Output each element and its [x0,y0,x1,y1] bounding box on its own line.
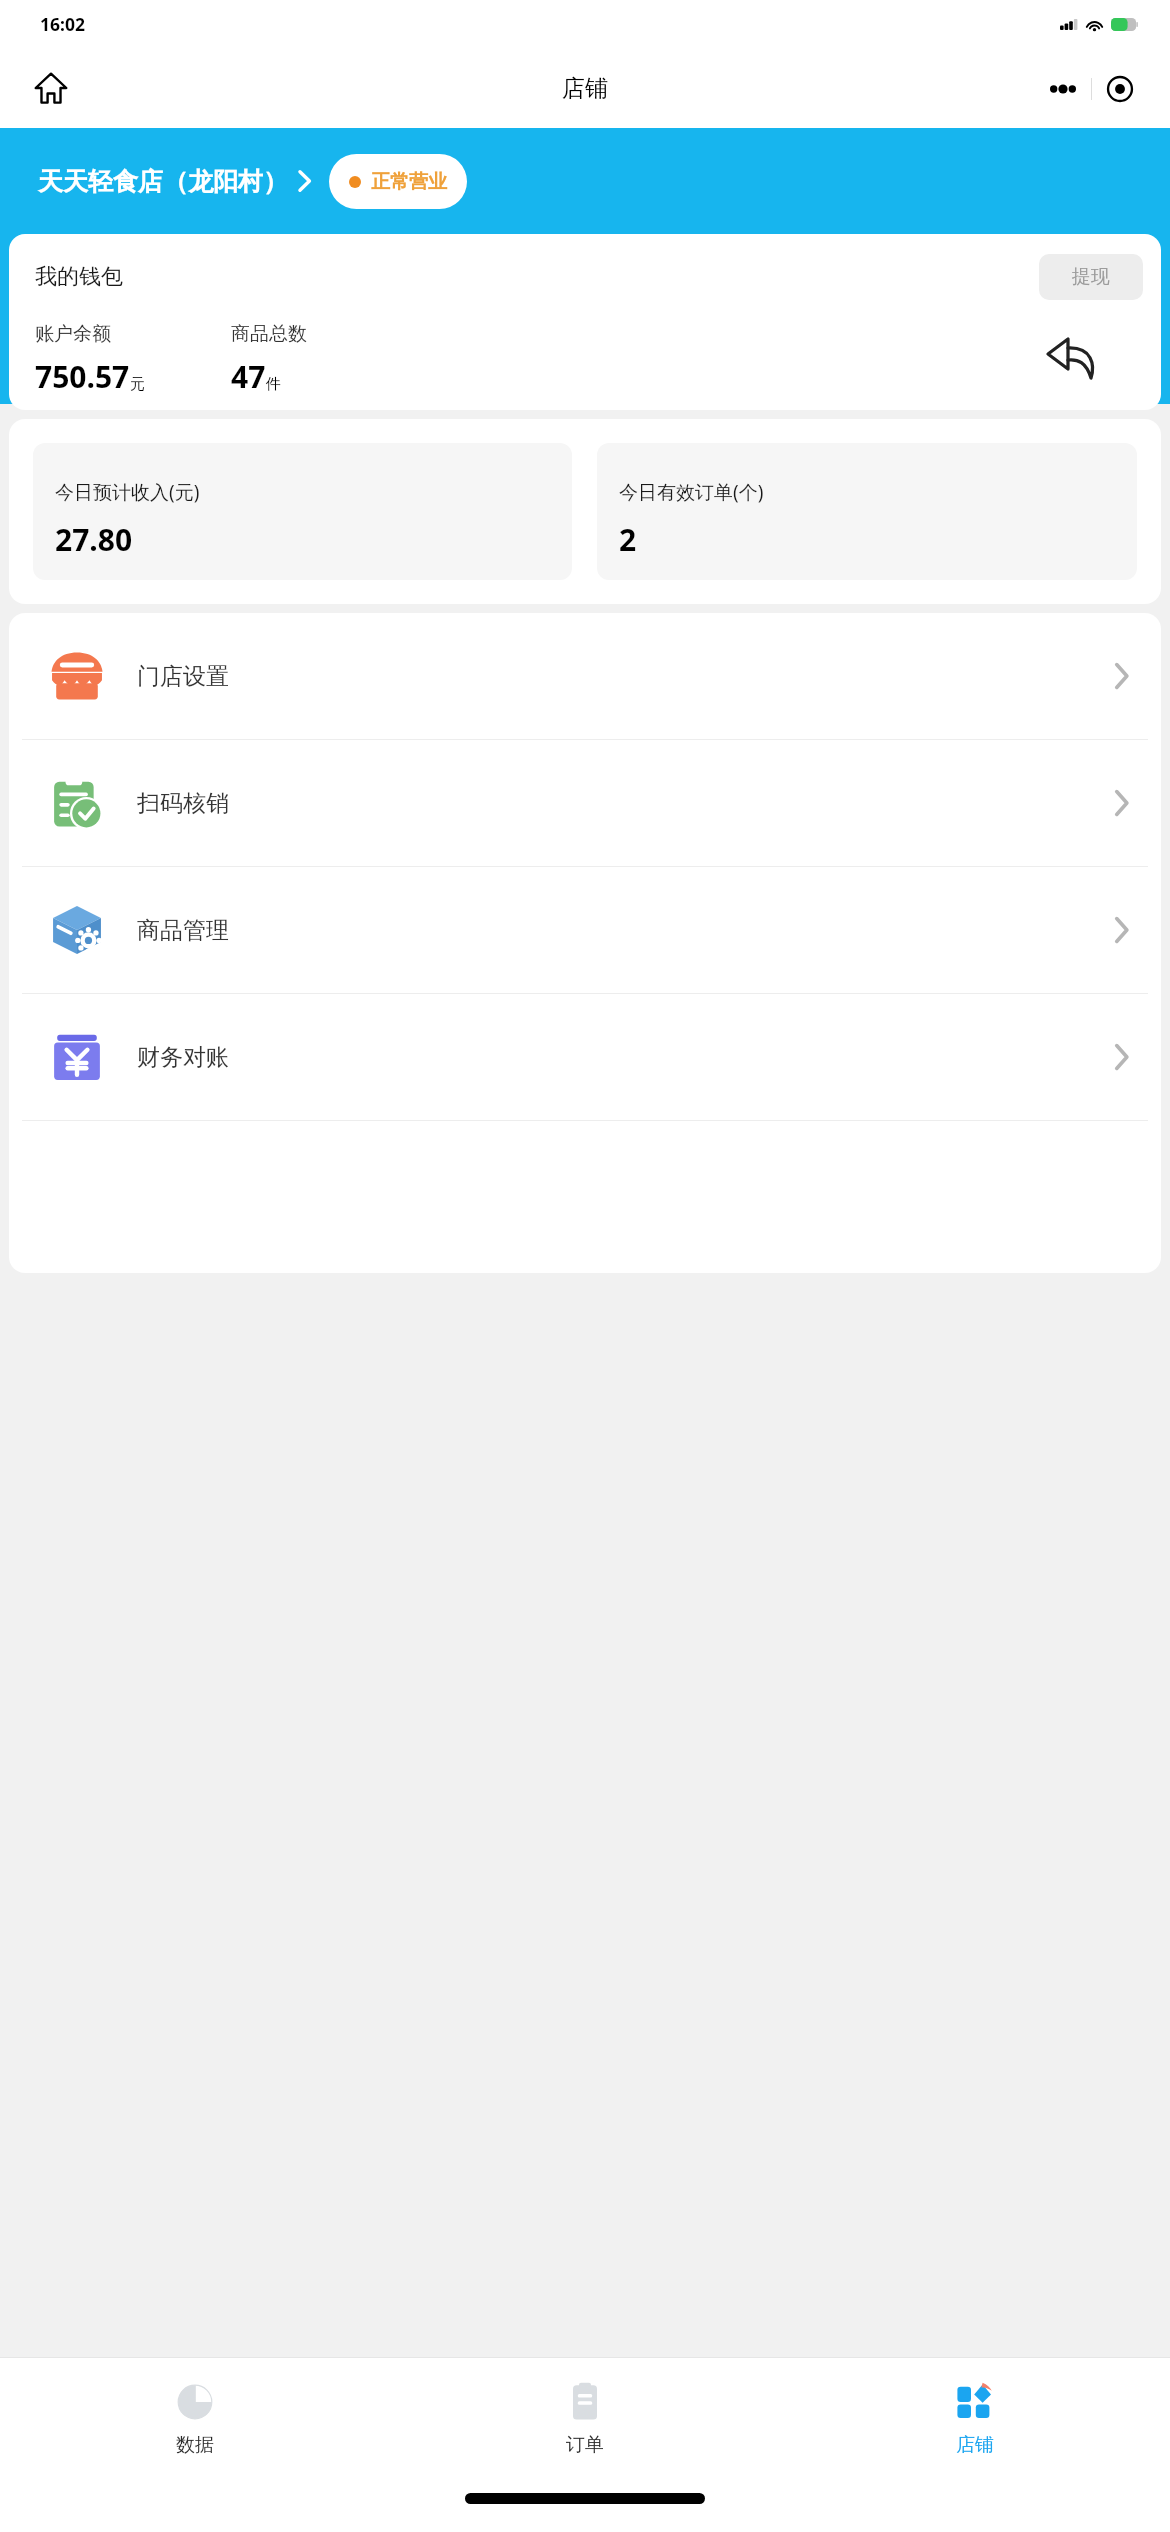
staticText: 扫码核销 [137,789,229,818]
staticText: 16:02 [40,12,85,36]
staticText: 提现 [1072,265,1110,289]
staticText: 商品总数 [231,322,307,346]
button[interactable]: Share [1020,308,1122,410]
button[interactable]: 商品管理 [9,867,1161,993]
staticText: 商品管理 [137,916,229,945]
button[interactable]: Home [24,61,78,115]
button[interactable]: 财务对账 [9,994,1161,1120]
button[interactable]: More [1035,64,1091,113]
staticText: 财务对账 [137,1043,229,1072]
staticText: 门店设置 [137,662,229,691]
staticText: 数据 [176,2433,214,2457]
staticText: 天天轻食店（龙阳村） [38,166,288,197]
staticText: 订单 [566,2433,604,2457]
staticText: 750.57 [35,356,130,397]
staticText: 元 [130,375,145,394]
button[interactable]: 今日预计收入(元) [33,443,572,580]
button[interactable]: 正常营业 [349,154,447,209]
staticText: 今日预计收入(元) [55,479,200,505]
staticText: 27.80 [55,519,133,560]
button[interactable]: 天天轻食店（龙阳村） [38,128,1146,234]
staticText: 件 [266,375,281,394]
button[interactable]: 提现 [1039,254,1143,300]
staticText: 今日有效订单(个) [619,479,764,505]
button[interactable]: 门店设置 [9,613,1161,739]
button[interactable]: Close [1092,64,1148,113]
button[interactable]: 扫码核销 [9,740,1161,866]
staticText: 正常营业 [371,170,447,194]
staticText: 店铺 [562,74,608,103]
staticText: 我的钱包 [35,263,123,291]
button[interactable]: 订单 [390,2358,780,2478]
staticText: 店铺 [956,2433,994,2457]
button[interactable]: 数据 [0,2358,390,2478]
button[interactable]: 店铺 [780,2358,1170,2478]
button[interactable]: 今日有效订单(个) [597,443,1137,580]
staticText: 2 [619,519,637,560]
staticText: 账户余额 [35,322,111,346]
staticText: 47 [231,356,266,397]
